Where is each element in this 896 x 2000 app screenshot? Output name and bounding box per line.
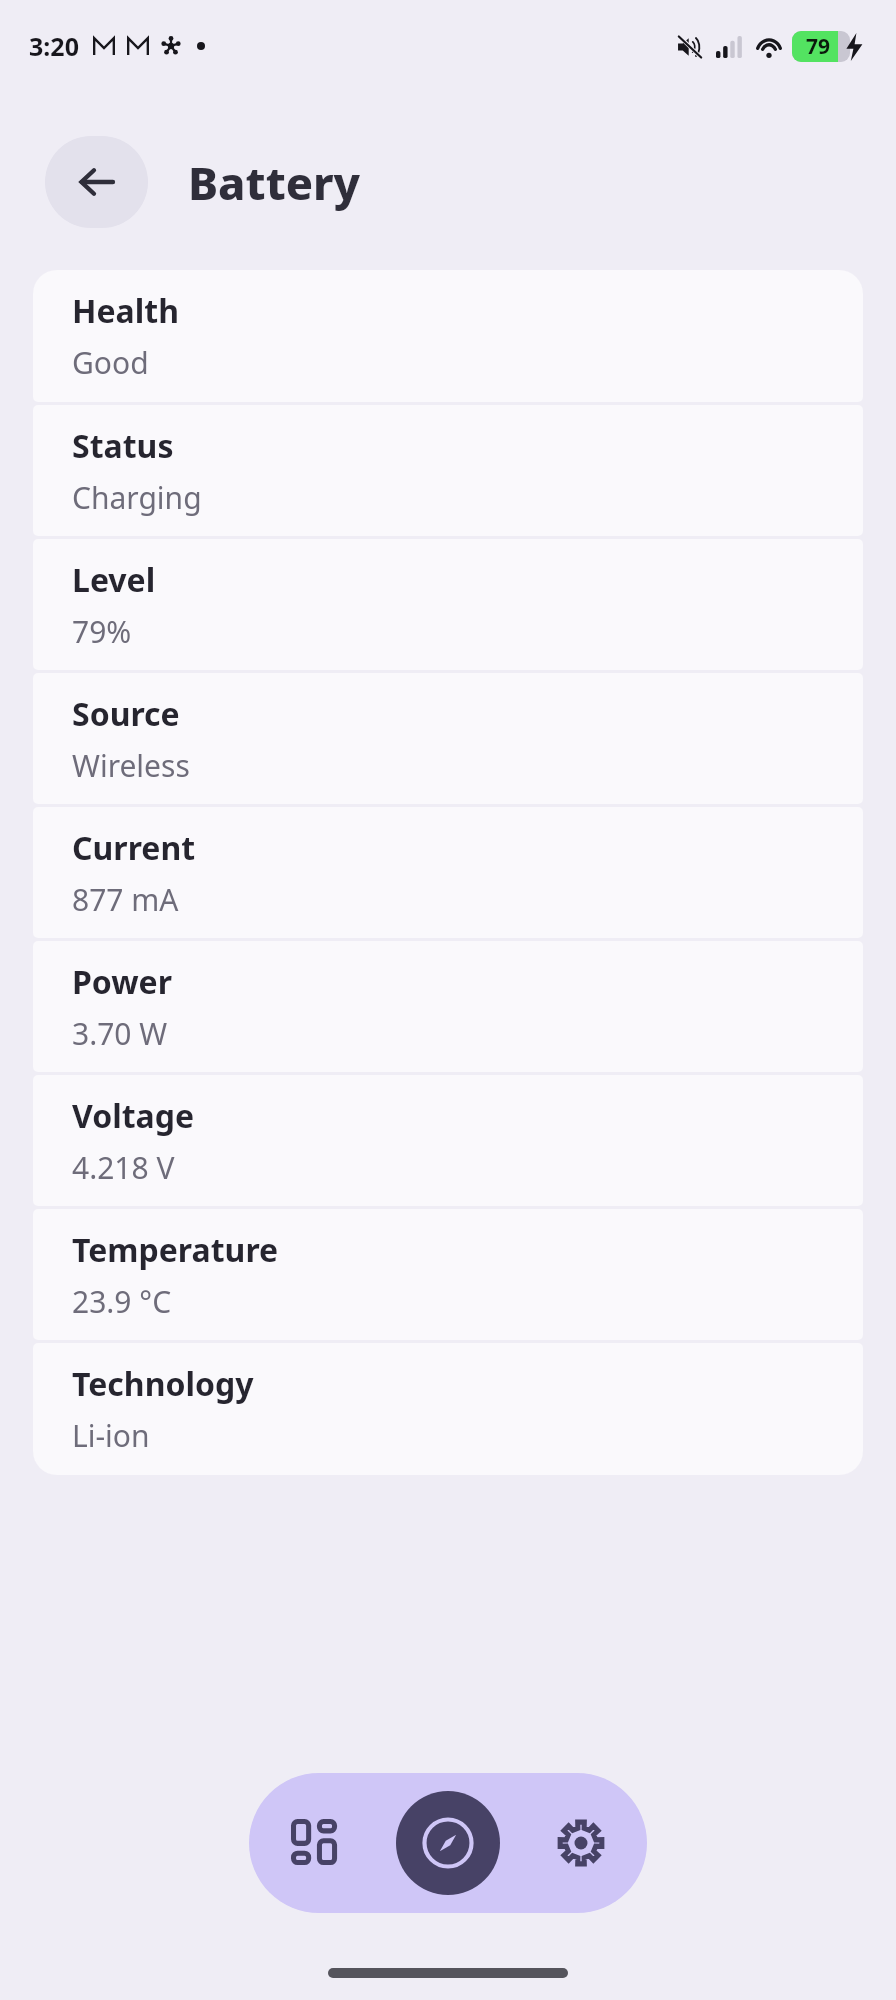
staticText: 877 mA bbox=[72, 879, 179, 920]
staticText: 79% bbox=[72, 611, 132, 652]
button[interactable]: Power bbox=[33, 941, 863, 1072]
button[interactable]: Dashboard bbox=[249, 1773, 381, 1913]
staticText: 79 bbox=[806, 32, 831, 61]
staticText: Wireless bbox=[72, 745, 190, 786]
staticText: Level bbox=[72, 558, 156, 602]
staticText: Power bbox=[72, 960, 173, 1004]
staticText: Charging bbox=[72, 477, 202, 518]
button[interactable]: Settings bbox=[515, 1773, 647, 1913]
staticText: Technology bbox=[72, 1362, 254, 1406]
button[interactable]: Current bbox=[33, 807, 863, 938]
staticText: Health bbox=[72, 289, 179, 333]
staticText: 4.218 V bbox=[72, 1147, 175, 1188]
staticText: 23.9 °C bbox=[72, 1281, 172, 1322]
staticText: 3.70 W bbox=[72, 1013, 168, 1054]
staticText: Source bbox=[72, 692, 180, 736]
staticText: Current bbox=[72, 826, 196, 870]
staticText: Voltage bbox=[72, 1094, 195, 1138]
staticText: Status bbox=[72, 424, 174, 468]
staticText: 3:20 bbox=[29, 29, 79, 63]
button[interactable]: Status bbox=[33, 405, 863, 536]
button[interactable]: Voltage bbox=[33, 1075, 863, 1206]
button[interactable]: Health bbox=[33, 270, 863, 402]
button[interactable]: Explore bbox=[381, 1773, 515, 1913]
button[interactable]: Source bbox=[33, 673, 863, 804]
button[interactable]: Back bbox=[45, 136, 148, 228]
button[interactable]: Temperature bbox=[33, 1209, 863, 1340]
staticText: Li-ion bbox=[72, 1415, 150, 1456]
staticText: Good bbox=[72, 342, 149, 383]
staticText: Battery bbox=[188, 152, 361, 213]
button[interactable]: Technology bbox=[33, 1343, 863, 1475]
button[interactable]: Level bbox=[33, 539, 863, 670]
staticText: Temperature bbox=[72, 1228, 279, 1272]
